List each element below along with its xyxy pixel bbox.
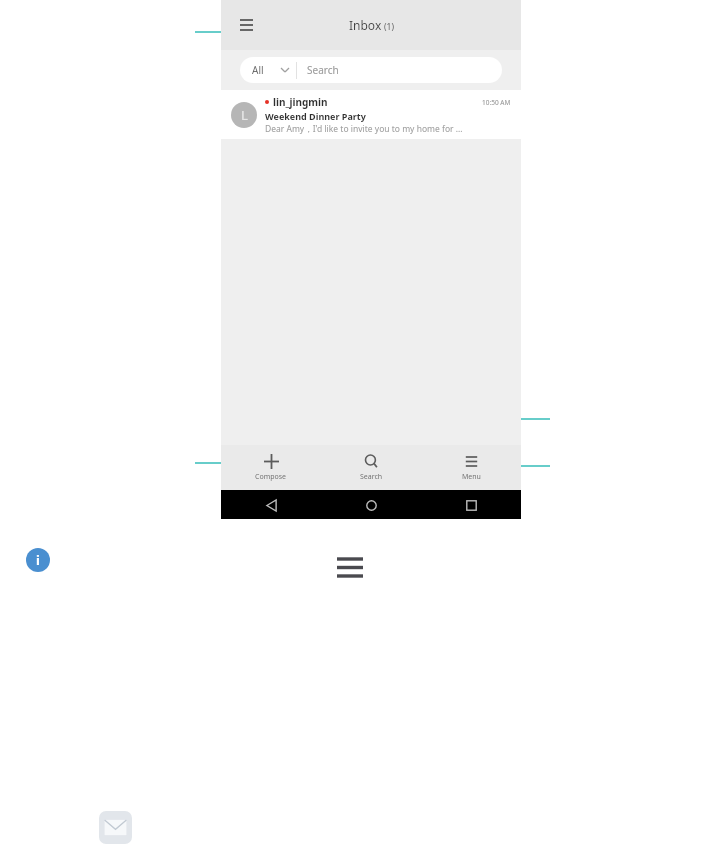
staticText: L bbox=[241, 106, 248, 124]
staticText: Weekend Dinner Party bbox=[265, 110, 366, 122]
button[interactable]: Information bbox=[26, 548, 50, 572]
staticText: All bbox=[252, 63, 264, 77]
button[interactable]: Mail bbox=[99, 811, 132, 844]
button[interactable]: Recents bbox=[458, 492, 484, 518]
staticText: i bbox=[36, 551, 40, 569]
button[interactable]: Home bbox=[358, 492, 384, 518]
staticText: Search bbox=[307, 63, 339, 77]
button[interactable]: Menu bbox=[334, 553, 366, 581]
staticText: Compose bbox=[255, 472, 287, 482]
button[interactable]: All bbox=[240, 57, 296, 83]
button[interactable]: Navigation menu bbox=[231, 10, 261, 40]
staticText: (1) bbox=[384, 21, 394, 33]
button[interactable]: Search bbox=[297, 57, 502, 83]
button[interactable]: Menu bbox=[421, 445, 521, 490]
staticText: Search bbox=[360, 472, 383, 482]
staticText: 10:50 AM bbox=[482, 98, 511, 107]
staticText: Menu bbox=[462, 472, 481, 482]
button[interactable]: Back bbox=[258, 492, 284, 518]
staticText: Inbox bbox=[349, 17, 382, 33]
staticText: Dear Amy，I'd like to invite you to my ho… bbox=[265, 123, 463, 135]
button[interactable]: Compose bbox=[221, 445, 321, 490]
button[interactable]: L bbox=[221, 90, 521, 139]
button[interactable]: Search bbox=[321, 445, 421, 490]
staticText: lin_jingmin bbox=[273, 95, 328, 109]
